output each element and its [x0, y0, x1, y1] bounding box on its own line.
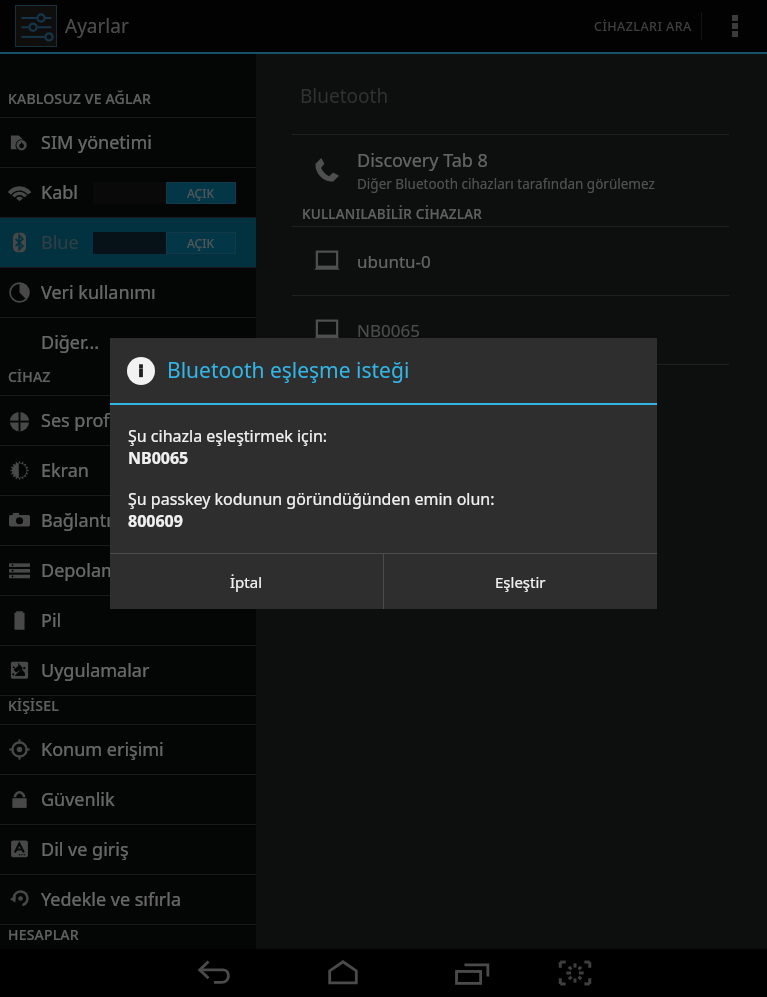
staticText: NB0065	[128, 447, 189, 469]
staticText: Güvenlik	[41, 787, 115, 812]
button[interactable]: Ekran	[0, 446, 256, 495]
staticText: Yedekle ve sıfırla	[41, 887, 182, 912]
button[interactable]: Depolam	[0, 546, 256, 595]
button[interactable]: Diğer...	[0, 318, 256, 367]
staticText: ubuntu-0	[357, 250, 431, 273]
button[interactable]: Back	[187, 949, 243, 997]
staticText: Ekran	[41, 458, 89, 483]
staticText: Bluetooth	[300, 83, 389, 109]
button[interactable]: Veri kullanımı	[0, 268, 256, 317]
button[interactable]: Dil ve giriş	[0, 825, 256, 874]
staticText: Konum erişimi	[41, 737, 164, 762]
staticText: Şu passkey kodunun göründüğünden emin ol…	[128, 488, 495, 510]
button[interactable]: Pil	[0, 596, 256, 645]
staticText: Eşleştir	[495, 572, 546, 592]
staticText: Pil	[41, 608, 62, 633]
button[interactable]: Toggle	[93, 182, 236, 204]
staticText: Diğer...	[41, 330, 100, 355]
button[interactable]: İptal	[110, 554, 383, 609]
button[interactable]: Settings	[15, 5, 57, 47]
staticText: CİHAZLARI ARA	[594, 18, 692, 35]
button[interactable]: Kabl	[0, 168, 256, 217]
button[interactable]: Discovery Tab 8	[256, 135, 767, 205]
staticText: Ses profi	[41, 408, 115, 433]
button[interactable]: ubuntu-0	[256, 227, 767, 295]
staticText: AÇIK	[187, 235, 215, 251]
staticText: KİŞİSEL	[8, 696, 59, 715]
button[interactable]: Bağlantı	[0, 496, 256, 545]
button[interactable]: Screenshot	[547, 949, 603, 997]
staticText: CİHAZ	[8, 367, 51, 386]
staticText: Discovery Tab 8	[357, 148, 488, 173]
staticText: Uygulamalar	[41, 658, 150, 683]
staticText: AÇIK	[187, 185, 215, 201]
staticText: Ayarlar	[65, 13, 129, 39]
button[interactable]: CİHAZLARI ARA	[583, 0, 701, 52]
staticText: Veri kullanımı	[41, 280, 156, 305]
button[interactable]: Recents	[444, 949, 500, 997]
staticText: Blue	[41, 230, 79, 255]
staticText: KABLOSUZ VE AĞLAR	[8, 89, 152, 108]
staticText: Şu cihazla eşleştirmek için:	[128, 425, 328, 447]
staticText: NB0065	[357, 319, 420, 342]
staticText: SIM yönetimi	[41, 130, 152, 155]
staticText: İptal	[230, 572, 263, 592]
button[interactable]: Ses profi	[0, 396, 256, 445]
staticText: Bağlantı	[41, 508, 111, 533]
staticText: Dil ve giriş	[41, 837, 129, 862]
button[interactable]: More options	[702, 0, 767, 52]
button[interactable]: Güvenlik	[0, 775, 256, 824]
staticText: KULLANILABİLİR CİHAZLAR	[302, 205, 482, 223]
staticText: Diğer Bluetooth cihazları tarafından gör…	[357, 175, 655, 193]
staticText: Depolam	[41, 558, 118, 583]
staticText: Bluetooth eşleşme isteği	[167, 356, 410, 385]
button[interactable]: NB0065	[256, 296, 767, 364]
staticText: HESAPLAR	[8, 925, 79, 940]
button[interactable]: Yedekle ve sıfırla	[0, 875, 256, 924]
button[interactable]: Toggle	[93, 232, 236, 254]
button[interactable]: Uygulamalar	[0, 646, 256, 695]
button[interactable]: Home	[315, 949, 371, 997]
button[interactable]: Blue	[0, 218, 256, 267]
button[interactable]: Eşleştir	[384, 554, 657, 609]
button[interactable]: SIM yönetimi	[0, 118, 256, 167]
staticText: 800609	[128, 510, 183, 532]
button[interactable]: Konum erişimi	[0, 725, 256, 774]
staticText: Kabl	[41, 180, 78, 205]
